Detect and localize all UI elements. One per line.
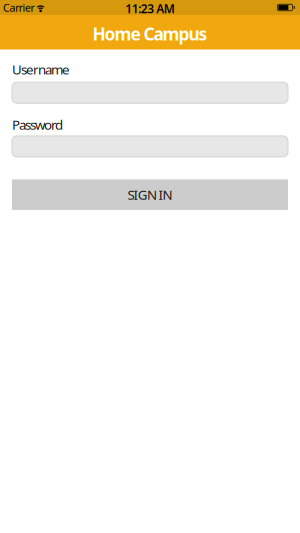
button[interactable]: SIGN IN — [12, 179, 288, 210]
staticText: 11:23 AM — [125, 0, 175, 16]
staticText: SIGN IN — [127, 186, 173, 203]
staticText: Username — [12, 60, 70, 78]
staticText: Carrier — [3, 0, 35, 15]
staticText: Password — [12, 116, 63, 133]
button[interactable] — [12, 136, 288, 157]
button[interactable] — [12, 82, 288, 103]
staticText: Home Campus — [92, 22, 207, 45]
